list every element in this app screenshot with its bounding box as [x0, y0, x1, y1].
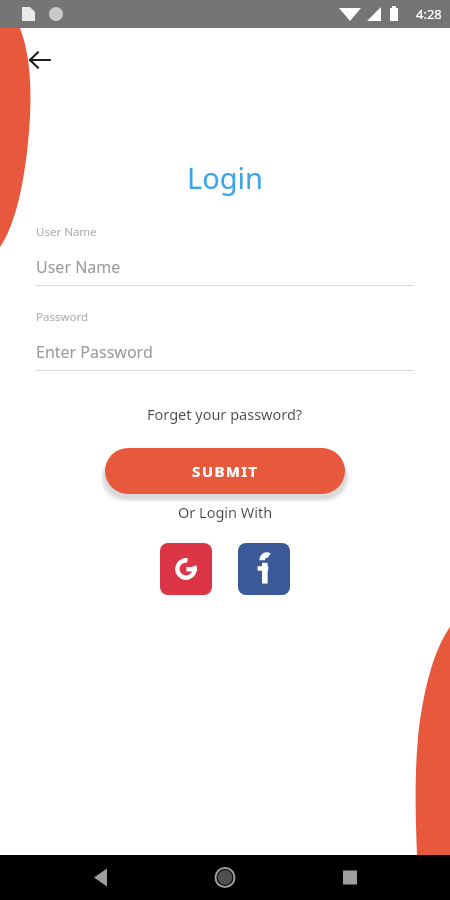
staticText: User Name [36, 224, 97, 240]
button[interactable]: Password [0, 309, 450, 371]
staticText: SUBMIT [192, 461, 259, 481]
staticText: Or Login With [178, 502, 273, 522]
staticText: Forget your password? [147, 404, 303, 424]
button[interactable]: Back [20, 40, 60, 80]
button[interactable]: User Name [0, 224, 450, 286]
button[interactable]: SUBMIT [105, 448, 345, 494]
staticText: 4:28 [416, 5, 442, 23]
button[interactable]: Forget your password? [0, 404, 450, 424]
button[interactable]: Sign in with Google [160, 543, 212, 595]
staticText: Login [0, 158, 450, 197]
button[interactable]: Sign in with Facebook [238, 543, 290, 595]
staticText: Password [36, 309, 89, 325]
staticText: User Name [36, 256, 121, 278]
staticText: Enter Password [36, 341, 153, 363]
